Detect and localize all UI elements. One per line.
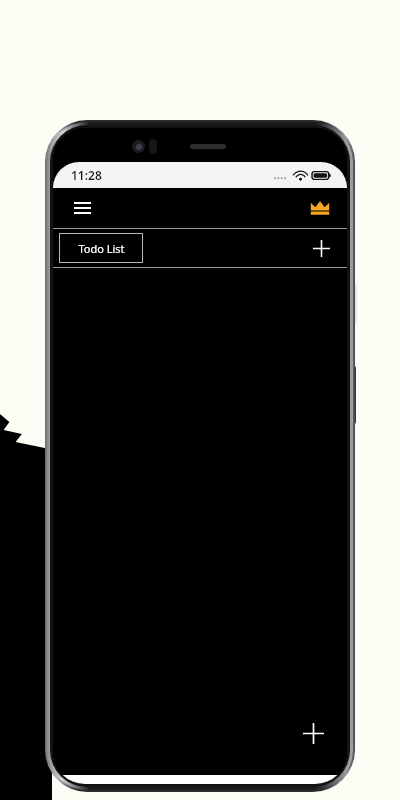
- button[interactable]: Open navigation menu: [65, 191, 99, 225]
- button[interactable]: Todo List: [59, 233, 143, 263]
- staticText: 11:28: [71, 167, 102, 183]
- button[interactable]: Premium: [303, 191, 337, 225]
- button[interactable]: Add list: [303, 230, 339, 266]
- staticText: Todo List: [78, 241, 125, 256]
- button[interactable]: Add todo: [293, 713, 333, 753]
